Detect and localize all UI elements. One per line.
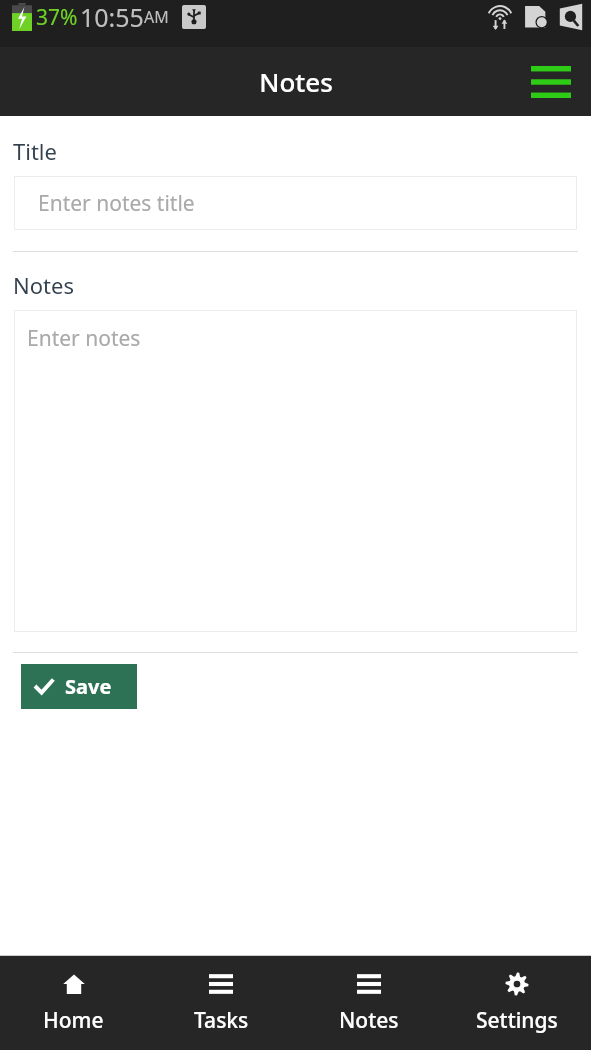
button[interactable]: Settings xyxy=(443,956,591,1050)
staticText: Notes xyxy=(13,270,74,300)
staticText: Enter notes xyxy=(27,324,141,353)
button[interactable]: Notes xyxy=(295,956,443,1050)
staticText: Notes xyxy=(339,1006,399,1035)
staticText: Notes xyxy=(259,64,333,99)
staticText: 37% xyxy=(36,3,78,32)
button[interactable]: Menu xyxy=(525,56,577,108)
staticText: Settings xyxy=(476,1006,558,1035)
staticText: Save xyxy=(65,673,112,700)
staticText: Home xyxy=(43,1006,104,1035)
staticText: Title xyxy=(13,136,57,166)
button[interactable]: Save xyxy=(21,664,137,709)
staticText: 10:55 xyxy=(80,0,144,34)
staticText: Enter notes title xyxy=(38,189,195,218)
button[interactable]: Enter notes title xyxy=(14,176,577,230)
staticText: AM xyxy=(144,6,169,28)
button[interactable]: Home xyxy=(0,956,147,1050)
staticText: Tasks xyxy=(194,1006,249,1035)
button[interactable]: Tasks xyxy=(147,956,295,1050)
button[interactable]: Enter notes xyxy=(14,310,577,632)
